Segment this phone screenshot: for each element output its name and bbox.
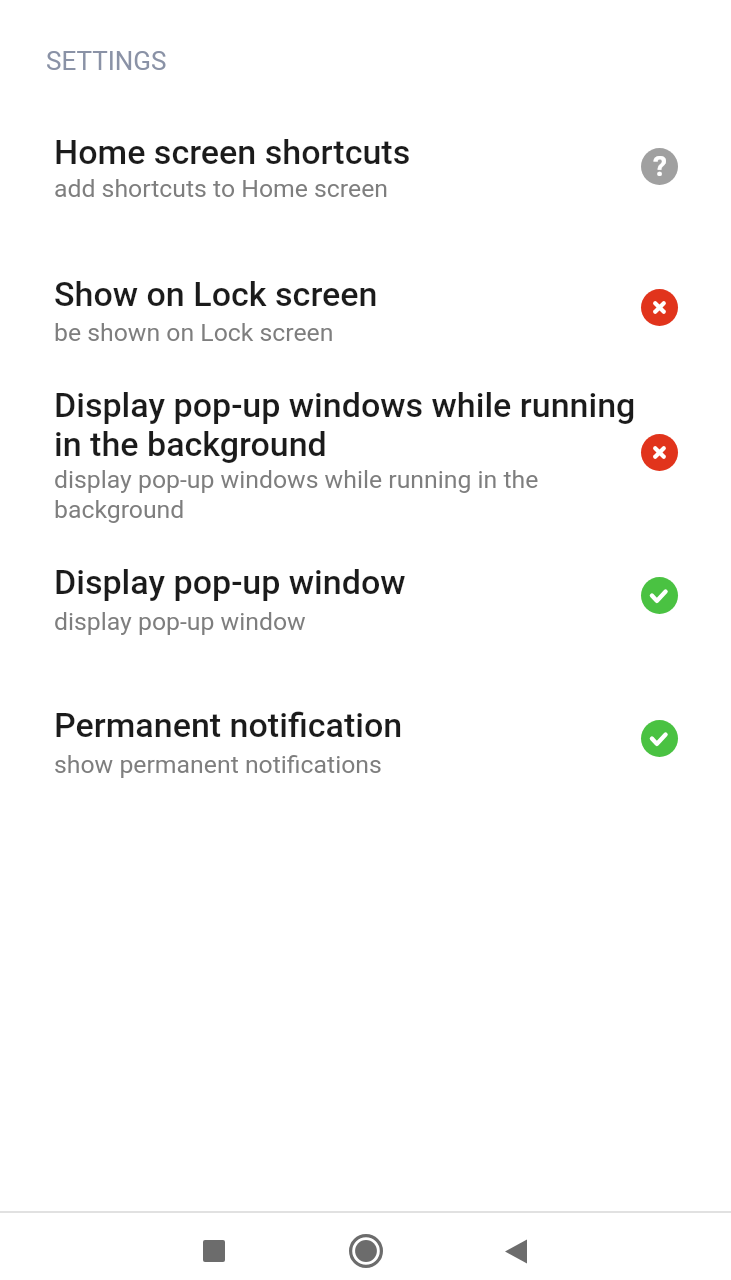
staticText: Show on Lock screen [54, 274, 378, 314]
staticText: be shown on Lock screen [54, 318, 334, 347]
button[interactable]: Show on Lock screen [0, 258, 731, 354]
staticText: Home screen shortcuts [54, 132, 411, 172]
staticText: ? [653, 150, 667, 183]
staticText: add shortcuts to Home screen [54, 174, 389, 203]
button[interactable] [485, 1221, 545, 1280]
button[interactable]: Display pop-up windows while running in … [0, 368, 731, 538]
button[interactable]: Display pop-up window [0, 548, 731, 648]
staticText: display pop-up windows while running in … [54, 465, 539, 524]
staticText: SETTINGS [46, 46, 167, 76]
button[interactable]: Home screen shortcuts [0, 118, 731, 222]
staticText: display pop-up window [54, 607, 306, 636]
button[interactable] [336, 1221, 396, 1280]
staticText: Display pop-up windows while running in … [54, 385, 636, 465]
button[interactable] [184, 1221, 244, 1280]
staticText: Display pop-up window [54, 562, 406, 602]
staticText: show permanent notifications [54, 750, 382, 779]
staticText: Permanent notification [54, 705, 403, 745]
button[interactable]: Permanent notification [0, 690, 731, 790]
